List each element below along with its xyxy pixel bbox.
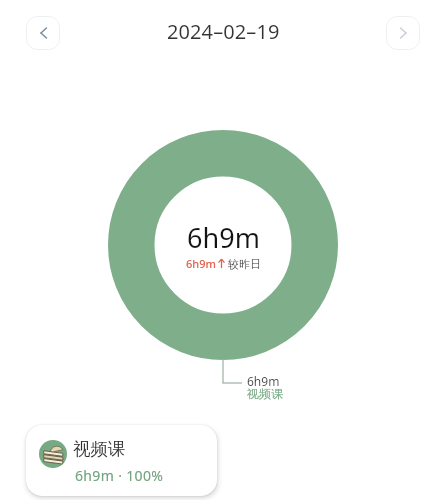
staticText: 视频课 bbox=[247, 386, 283, 401]
staticText: 6h9m · 100% bbox=[75, 466, 164, 485]
button[interactable]: 视频课 bbox=[26, 425, 217, 496]
staticText: 较昨日 bbox=[228, 257, 261, 271]
staticText: 6h9m bbox=[247, 373, 280, 389]
button[interactable]: Next day bbox=[386, 16, 420, 50]
staticText: 2024–02–19 bbox=[167, 18, 280, 45]
button[interactable]: Previous day bbox=[26, 16, 60, 50]
staticText: 6h9m bbox=[186, 256, 216, 271]
staticText: 6h9m bbox=[187, 219, 260, 256]
staticText: 视频课 bbox=[73, 438, 126, 460]
